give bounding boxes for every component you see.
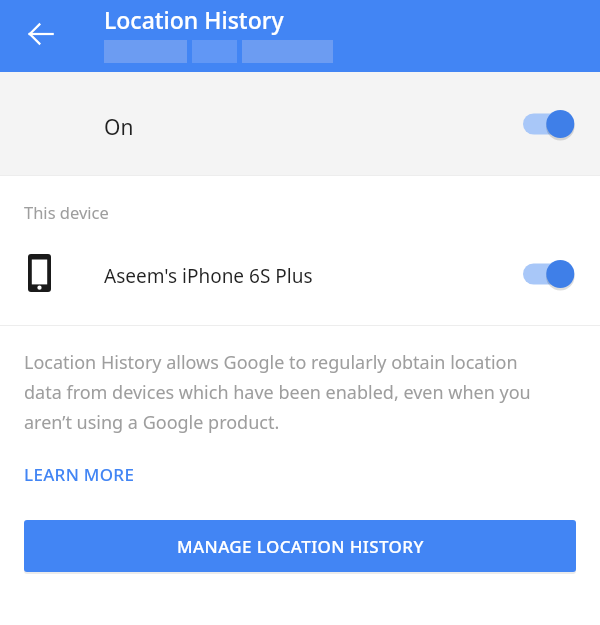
staticText: Location History — [104, 4, 284, 35]
button[interactable]: Back — [20, 13, 62, 55]
button[interactable]: MANAGE LOCATION HISTORY — [24, 520, 576, 572]
staticText: MANAGE LOCATION HISTORY — [177, 535, 424, 558]
staticText: On — [104, 113, 134, 142]
staticText: Aseem's iPhone 6S Plus — [104, 263, 313, 289]
staticText: This device — [24, 201, 109, 223]
staticText: Location History allows Google to regula… — [24, 350, 518, 375]
staticText: LEARN MORE — [24, 463, 135, 486]
button[interactable]: Toggle — [523, 258, 579, 290]
button[interactable]: Aseem's iPhone 6S Plus — [0, 238, 600, 310]
staticText: data from devices which have been enable… — [24, 380, 531, 405]
button[interactable]: Toggle — [523, 108, 579, 140]
staticText: aren’t using a Google product. — [24, 410, 280, 435]
button[interactable]: On — [0, 72, 600, 175]
button[interactable]: LEARN MORE — [24, 463, 135, 486]
